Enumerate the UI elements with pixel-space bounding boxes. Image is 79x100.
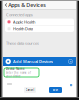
- staticText: These data sources: [6, 40, 39, 46]
- staticText: Add Manual Devices: [13, 59, 53, 64]
- button[interactable]: Apple Health: [5, 19, 74, 25]
- staticText: ×: [69, 59, 71, 64]
- staticText: Save: [52, 88, 58, 92]
- staticText: Health Data: [13, 26, 33, 31]
- staticText: Apps & Devices: [8, 1, 46, 9]
- staticText: Device Name: [6, 67, 25, 70]
- staticText: Connected apps: [6, 12, 33, 17]
- staticText: Cancel: [25, 88, 34, 92]
- staticText: Apple Health: [13, 19, 35, 24]
- button[interactable]: Close: [67, 58, 73, 64]
- button[interactable]: Save: [49, 87, 62, 93]
- button[interactable]: Cancel: [24, 87, 36, 93]
- button[interactable]: Health Data: [5, 25, 74, 32]
- button[interactable]: Apps & Devices: [3, 1, 48, 9]
- staticText: Enter the name of your device: [6, 71, 31, 78]
